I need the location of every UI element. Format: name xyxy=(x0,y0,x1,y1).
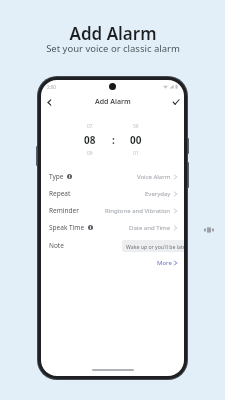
staticText: 07 xyxy=(87,123,93,130)
staticText: 09 xyxy=(87,150,93,157)
staticText: Voice Alarm xyxy=(137,173,171,181)
staticText: Note xyxy=(49,241,64,250)
staticText: Type xyxy=(49,172,64,181)
staticText: Wake up or you'll be late! xyxy=(126,243,184,250)
staticText: 08 xyxy=(84,133,96,147)
button[interactable]: More xyxy=(157,259,177,267)
staticText: Reminder xyxy=(49,206,79,215)
staticText: : xyxy=(112,133,115,147)
staticText: 59 xyxy=(133,123,139,130)
staticText: 00 xyxy=(130,133,142,147)
staticText: Everyday xyxy=(145,190,171,198)
staticText: Date and Time xyxy=(129,224,171,232)
staticText: More xyxy=(157,259,172,267)
staticText: 2:00 xyxy=(47,84,56,90)
staticText: Add Alarm xyxy=(69,22,157,45)
button[interactable]: Note xyxy=(41,236,184,255)
button[interactable]: Type xyxy=(41,168,184,185)
button[interactable]: Repeat xyxy=(41,185,184,202)
staticText: Set your voice or classic alarm xyxy=(46,42,180,55)
button[interactable]: Speak Time xyxy=(41,219,184,236)
staticText: 01 xyxy=(133,150,139,157)
button[interactable]: Reminder xyxy=(41,202,184,219)
button[interactable]: Back xyxy=(41,94,57,110)
button[interactable]: Save alarm xyxy=(168,94,184,110)
staticText: Ringtone and Vibration xyxy=(105,207,171,215)
staticText: Repeat xyxy=(49,189,71,198)
staticText: Speak Time xyxy=(49,223,85,232)
staticText: Add Alarm xyxy=(95,97,131,107)
